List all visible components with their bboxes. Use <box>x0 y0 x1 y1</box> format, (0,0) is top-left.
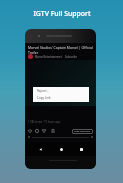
staticText: Keep Watching <box>74 130 91 133</box>
button[interactable]: Share <box>41 128 47 134</box>
staticText: Marvel Studios' Captain Marvel | Officia… <box>28 45 93 50</box>
button[interactable]: Save <box>50 128 56 134</box>
staticText: IGTV Full Support <box>33 9 91 18</box>
button[interactable]: Report... <box>33 87 89 94</box>
staticText: Marvel Entertainment <box>35 55 62 59</box>
button[interactable]: Home <box>56 144 66 154</box>
button[interactable]: Comment <box>34 128 40 134</box>
staticText: 1,982 views · 19 hours ago <box>28 120 61 124</box>
button[interactable]: Keep Watching <box>72 129 93 134</box>
button[interactable]: Like <box>27 128 33 134</box>
button[interactable]: Recents <box>76 144 86 154</box>
staticText: Copy Link <box>37 96 51 100</box>
staticText: Report... <box>37 89 49 93</box>
staticText: Subscribe <box>65 55 77 59</box>
button[interactable]: Back <box>35 144 45 154</box>
staticText: Trailer <box>28 50 39 55</box>
button[interactable]: Copy Link <box>33 94 89 102</box>
